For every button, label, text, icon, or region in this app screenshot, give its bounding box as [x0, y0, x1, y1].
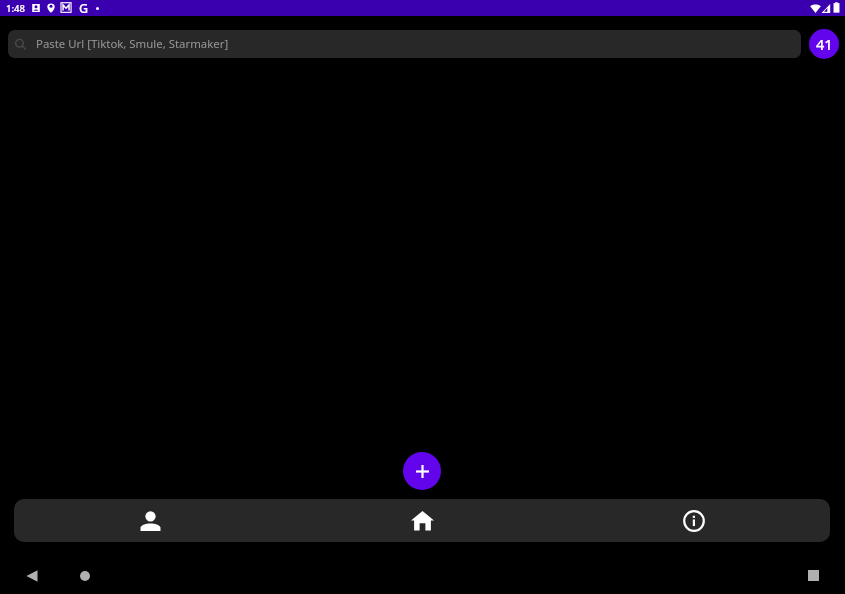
button[interactable]: Add: [403, 452, 441, 490]
staticText: 1:48: [6, 2, 25, 15]
button[interactable]: Back: [19, 563, 44, 588]
staticText: Paste Url [Tiktok, Smule, Starmaker]: [36, 36, 229, 52]
button[interactable]: Profile: [14, 499, 286, 542]
button[interactable]: Paste Url [Tiktok, Smule, Starmaker]: [8, 30, 801, 58]
button[interactable]: Home: [72, 563, 97, 588]
button[interactable]: Home: [286, 499, 558, 542]
button[interactable]: Recents: [801, 563, 826, 588]
button[interactable]: 41: [809, 29, 839, 59]
button[interactable]: Info: [558, 499, 830, 542]
staticText: G: [79, 0, 89, 16]
staticText: 41: [816, 34, 833, 54]
